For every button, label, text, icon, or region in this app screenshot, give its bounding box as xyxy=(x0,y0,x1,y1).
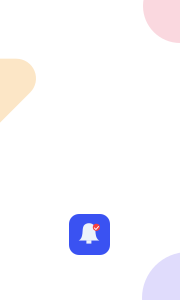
button[interactable]: Notifications xyxy=(69,214,110,255)
